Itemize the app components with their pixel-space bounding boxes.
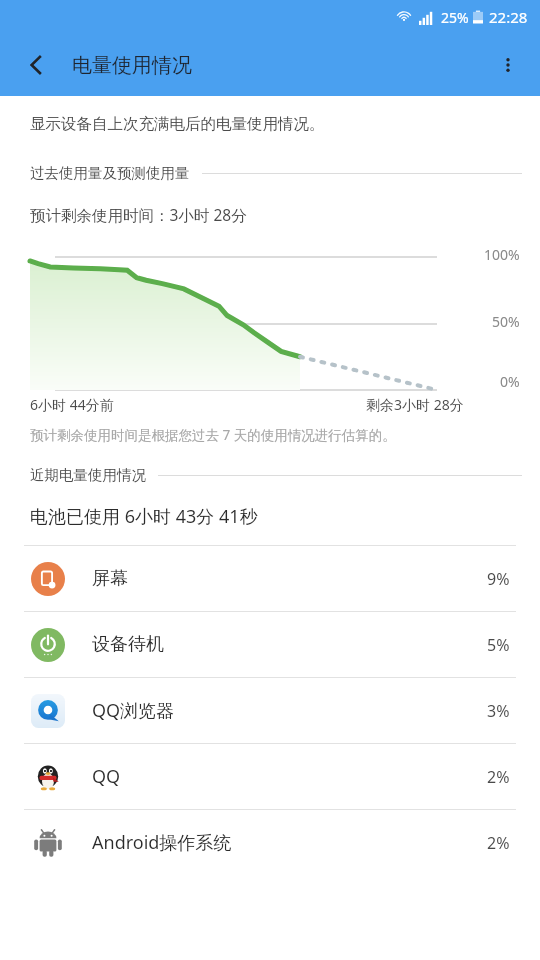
staticText: 2%	[487, 832, 510, 854]
staticText: 电量使用情况	[72, 53, 192, 78]
staticText: 5%	[487, 634, 510, 656]
staticText: QQ	[92, 764, 121, 789]
staticText: 屏幕	[92, 567, 128, 590]
button[interactable]: QQ	[0, 744, 540, 809]
button[interactable]: 设备待机	[0, 612, 540, 677]
staticText: 50%	[492, 312, 520, 331]
staticText: 预计剩余使用时间是根据您过去 7 天的使用情况进行估算的。	[30, 426, 396, 444]
staticText: 3%	[487, 700, 510, 722]
staticText: 9%	[487, 568, 510, 590]
button[interactable]: More options	[484, 41, 532, 89]
staticText: Android操作系统	[92, 830, 232, 855]
staticText: 过去使用量及预测使用量	[30, 164, 190, 182]
staticText: 近期电量使用情况	[30, 466, 146, 484]
staticText: 预计剩余使用时间：3小时 28分	[30, 204, 247, 225]
staticText: QQ浏览器	[92, 698, 175, 723]
staticText: 6小时 44分前	[30, 395, 114, 414]
staticText: 0%	[500, 372, 520, 391]
button[interactable]: 屏幕	[0, 546, 540, 611]
button[interactable]: Android操作系统	[0, 810, 540, 875]
staticText: 剩余3小时 28分	[366, 395, 464, 414]
button[interactable]: QQ浏览器	[0, 678, 540, 743]
button[interactable]: Back	[12, 41, 60, 89]
staticText: 电池已使用 6小时 43分 41秒	[30, 504, 258, 529]
staticText: 25%	[441, 8, 469, 27]
staticText: 100%	[484, 245, 520, 264]
staticText: 显示设备自上次充满电后的电量使用情况。	[30, 114, 325, 134]
staticText: 22:28	[489, 7, 528, 27]
staticText: 2%	[487, 766, 510, 788]
staticText: 设备待机	[92, 633, 164, 656]
